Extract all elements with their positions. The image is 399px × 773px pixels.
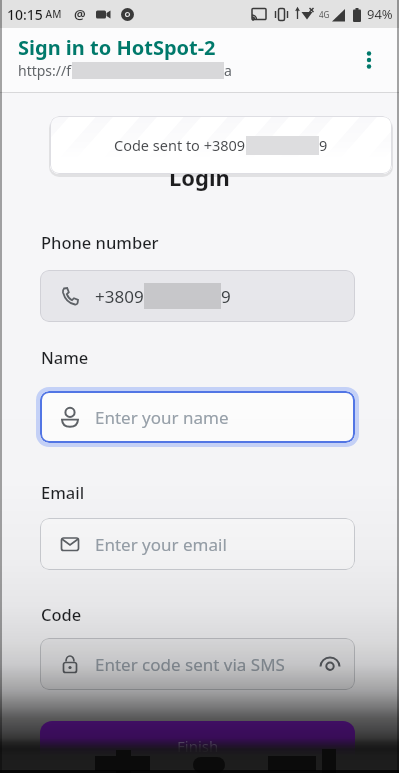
staticText: Finish	[177, 736, 219, 756]
staticText: https://f	[18, 61, 72, 80]
staticText: AM	[43, 7, 62, 21]
staticText: 94%	[367, 5, 393, 23]
staticText: 9	[319, 135, 328, 155]
staticText: Login	[169, 162, 230, 192]
staticText: 9	[221, 285, 231, 308]
staticText: Enter your name	[95, 406, 229, 429]
staticText: Phone number	[41, 231, 159, 253]
button[interactable]	[351, 42, 387, 78]
staticText: a	[224, 61, 232, 80]
staticText: Name	[41, 346, 89, 368]
button[interactable]: +3809	[40, 270, 355, 322]
button[interactable]: Finish	[40, 721, 355, 771]
staticText: Email	[41, 481, 85, 503]
button[interactable]: Enter your name	[40, 391, 355, 443]
button[interactable]: Enter your email	[40, 518, 355, 570]
staticText: Enter code sent via SMS	[95, 653, 285, 676]
staticText: 10:15	[7, 5, 43, 24]
staticText: Code	[41, 603, 82, 625]
staticText: Enter your email	[95, 533, 227, 556]
staticText: @	[74, 5, 86, 23]
staticText: +3809	[95, 285, 144, 308]
staticText: 4G	[319, 9, 330, 20]
staticText: Code sent to +3809	[114, 135, 246, 155]
button[interactable]: Enter code sent via SMS	[40, 638, 355, 690]
staticText: Sign in to HotSpot-2	[18, 34, 216, 61]
